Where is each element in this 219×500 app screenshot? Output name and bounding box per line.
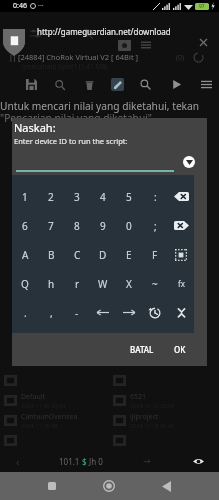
- button[interactable]: C: [64, 240, 90, 269]
- button[interactable]: ;: [142, 211, 168, 240]
- staticText: 2024-10-18 05:42: [130, 422, 175, 429]
- staticText: 5: [126, 190, 132, 204]
- button[interactable]: A: [12, 240, 38, 269]
- button[interactable]: [0, 430, 109, 450]
- staticText: 6: [22, 219, 28, 233]
- staticText: ‹: [16, 454, 20, 469]
- staticText: ||: [9, 53, 17, 63]
- staticText: Jh 0: [87, 456, 103, 467]
- staticText: E: [126, 248, 132, 262]
- button[interactable]: Left: [90, 298, 116, 327]
- button[interactable]: 1: [12, 182, 38, 211]
- button[interactable]: Backspace: [168, 182, 194, 211]
- staticText: $: [82, 456, 87, 467]
- staticText: Naskah:: [14, 120, 56, 135]
- button[interactable]: 5: [116, 182, 142, 211]
- button[interactable]: Run: [170, 78, 183, 91]
- other: Backspace: [174, 192, 189, 201]
- button[interactable]: Back: [153, 473, 179, 499]
- other: Select all: [175, 249, 187, 261]
- other: Right: [123, 308, 135, 317]
- button[interactable]: [109, 430, 219, 450]
- button[interactable]: :: [142, 182, 168, 211]
- staticText: .: [24, 306, 27, 320]
- button[interactable]: E: [116, 240, 142, 269]
- button[interactable]: 8: [64, 211, 90, 240]
- button[interactable]: Default: [0, 390, 109, 410]
- staticText: r: [75, 277, 80, 291]
- staticText: X: [126, 277, 132, 291]
- button[interactable]: ijiproject: [109, 410, 219, 430]
- button[interactable]: BATAL: [124, 338, 160, 361]
- button[interactable]: Search value: [54, 78, 67, 91]
- button[interactable]: Show: [191, 454, 205, 468]
- button[interactable]: [0, 370, 109, 390]
- button[interactable]: 6521: [109, 390, 219, 410]
- button[interactable]: 2: [38, 182, 64, 211]
- button[interactable]: OK: [168, 338, 192, 361]
- button[interactable]: Search: [139, 78, 152, 91]
- staticText: 9: [100, 219, 106, 233]
- staticText: 101.1: [59, 456, 82, 467]
- other: Left: [97, 308, 109, 317]
- staticText: 1: [22, 190, 28, 204]
- staticText: Enter device ID to run the script:: [14, 136, 128, 146]
- staticText: 97: [199, 3, 205, 10]
- other: History: [149, 307, 161, 319]
- staticText: -: [75, 306, 79, 320]
- button[interactable]: Backspace: [168, 211, 194, 240]
- staticText: http://gameguardian.net/download: [37, 26, 171, 37]
- staticText: ···: [38, 1, 44, 11]
- button[interactable]: 0: [116, 211, 142, 240]
- button[interactable]: [109, 370, 219, 390]
- button[interactable]: Right: [116, 298, 142, 327]
- button[interactable]: ,: [38, 298, 64, 327]
- staticText: D: [99, 248, 107, 262]
- staticText: CantaunOvensea: [21, 412, 78, 422]
- staticText: F: [152, 248, 158, 262]
- button[interactable]: B: [38, 240, 64, 269]
- button[interactable]: Delete: [83, 78, 96, 91]
- button[interactable]: 4: [90, 182, 116, 211]
- button[interactable]: History: [142, 298, 168, 327]
- button[interactable]: X: [116, 269, 142, 298]
- staticText: A: [22, 248, 29, 262]
- other: Backspace: [174, 221, 189, 230]
- button[interactable]: 6: [12, 211, 38, 240]
- button[interactable]: 7: [38, 211, 64, 240]
- staticText: 0: [126, 219, 132, 233]
- staticText: 0:46: [13, 1, 27, 11]
- button[interactable]: ~: [142, 269, 168, 298]
- button[interactable]: h: [38, 269, 64, 298]
- button[interactable]: CantaunOvensea: [0, 410, 109, 430]
- button[interactable]: D: [90, 240, 116, 269]
- button[interactable]: Collapse: [168, 298, 194, 327]
- staticText: →: [143, 456, 151, 466]
- staticText: 8: [74, 219, 80, 233]
- button[interactable]: W: [90, 269, 116, 298]
- staticText: (0): [176, 53, 185, 63]
- button[interactable]: Home: [96, 473, 122, 499]
- button[interactable]: Select all: [168, 240, 194, 269]
- button[interactable]: Save: [25, 78, 38, 91]
- button[interactable]: 3: [64, 182, 90, 211]
- button[interactable]: -: [64, 298, 90, 327]
- button[interactable]: Dropdown: [183, 156, 195, 168]
- button[interactable]: Close: [196, 35, 210, 49]
- button[interactable]: r: [64, 269, 90, 298]
- staticText: OK: [174, 344, 186, 355]
- button[interactable]: Q: [12, 269, 38, 298]
- button[interactable]: .: [12, 298, 38, 327]
- button[interactable]: 9: [90, 211, 116, 240]
- button[interactable]: Edit: [111, 78, 124, 91]
- staticText: B: [48, 248, 55, 262]
- staticText: ;: [154, 219, 157, 233]
- staticText: BATAL: [130, 344, 154, 355]
- button[interactable]: Recents: [39, 473, 65, 499]
- button[interactable]: Menu: [200, 78, 213, 91]
- staticText: 7: [48, 219, 54, 233]
- button[interactable]: fx: [168, 269, 194, 298]
- button[interactable]: F: [142, 240, 168, 269]
